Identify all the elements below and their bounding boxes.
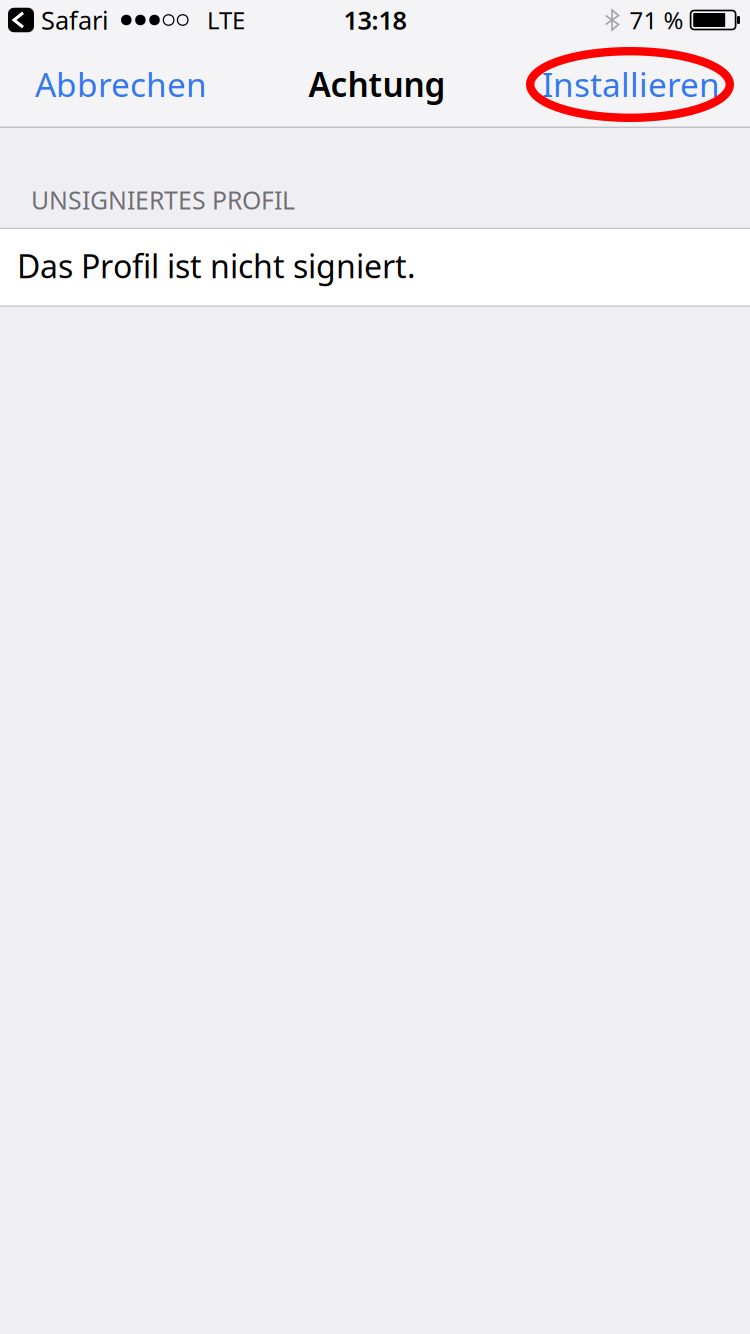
staticText: Das Profil ist nicht signiert. [17, 244, 416, 287]
staticText: Abbrechen [35, 62, 207, 106]
button[interactable]: Zurück zu Safari [0, 0, 109, 40]
staticText: 71 % [630, 4, 684, 36]
staticText: Installieren [542, 62, 720, 106]
staticText: LTE [207, 4, 245, 36]
staticText: Achtung [308, 62, 445, 106]
button[interactable]: Abbrechen [0, 40, 225, 128]
button[interactable]: Installieren [523, 40, 750, 128]
staticText: UNSIGNIERTES PROFIL [31, 183, 295, 217]
staticText: 13:18 [343, 3, 406, 37]
staticText: Safari [41, 3, 109, 37]
